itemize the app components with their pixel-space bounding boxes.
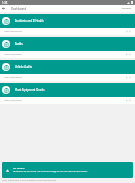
- staticText: Go offline: [13, 166, 25, 169]
- staticText: Note: offline data is only available for…: [2, 179, 56, 182]
- button[interactable]: View submissions: [0, 97, 135, 104]
- staticText: Vehicle Audits: [15, 65, 32, 69]
- button[interactable]: View submissions: [0, 51, 135, 58]
- staticText: Plant Equipment Checks: [15, 88, 45, 92]
- button[interactable]: Vehicle Audits: [0, 60, 135, 74]
- button[interactable]: Go offline: [2, 162, 133, 178]
- staticText: View submissions: [4, 99, 23, 102]
- staticText: View submissions: [4, 76, 23, 79]
- staticText: Accidents and Ill Health: [15, 19, 44, 23]
- button[interactable]: Accidents and Ill Health: [0, 14, 135, 28]
- button[interactable]: Back: [0, 5, 7, 12]
- button[interactable]: View submissions: [0, 28, 135, 35]
- staticText: View submissions: [4, 53, 23, 56]
- button[interactable]: Audits: [0, 37, 135, 51]
- staticText: 1:38: [2, 1, 8, 5]
- button[interactable]: Settings: [116, 7, 135, 10]
- button[interactable]: Plant Equipment Checks: [0, 83, 135, 97]
- staticText: Audits: [15, 42, 23, 46]
- button[interactable]: View submissions: [0, 74, 135, 81]
- staticText: View submissions: [4, 30, 23, 33]
- staticText: Settings: [122, 7, 131, 10]
- staticText: Dashboard: [11, 7, 26, 11]
- staticText: Download all forms for the selected site…: [13, 170, 88, 173]
